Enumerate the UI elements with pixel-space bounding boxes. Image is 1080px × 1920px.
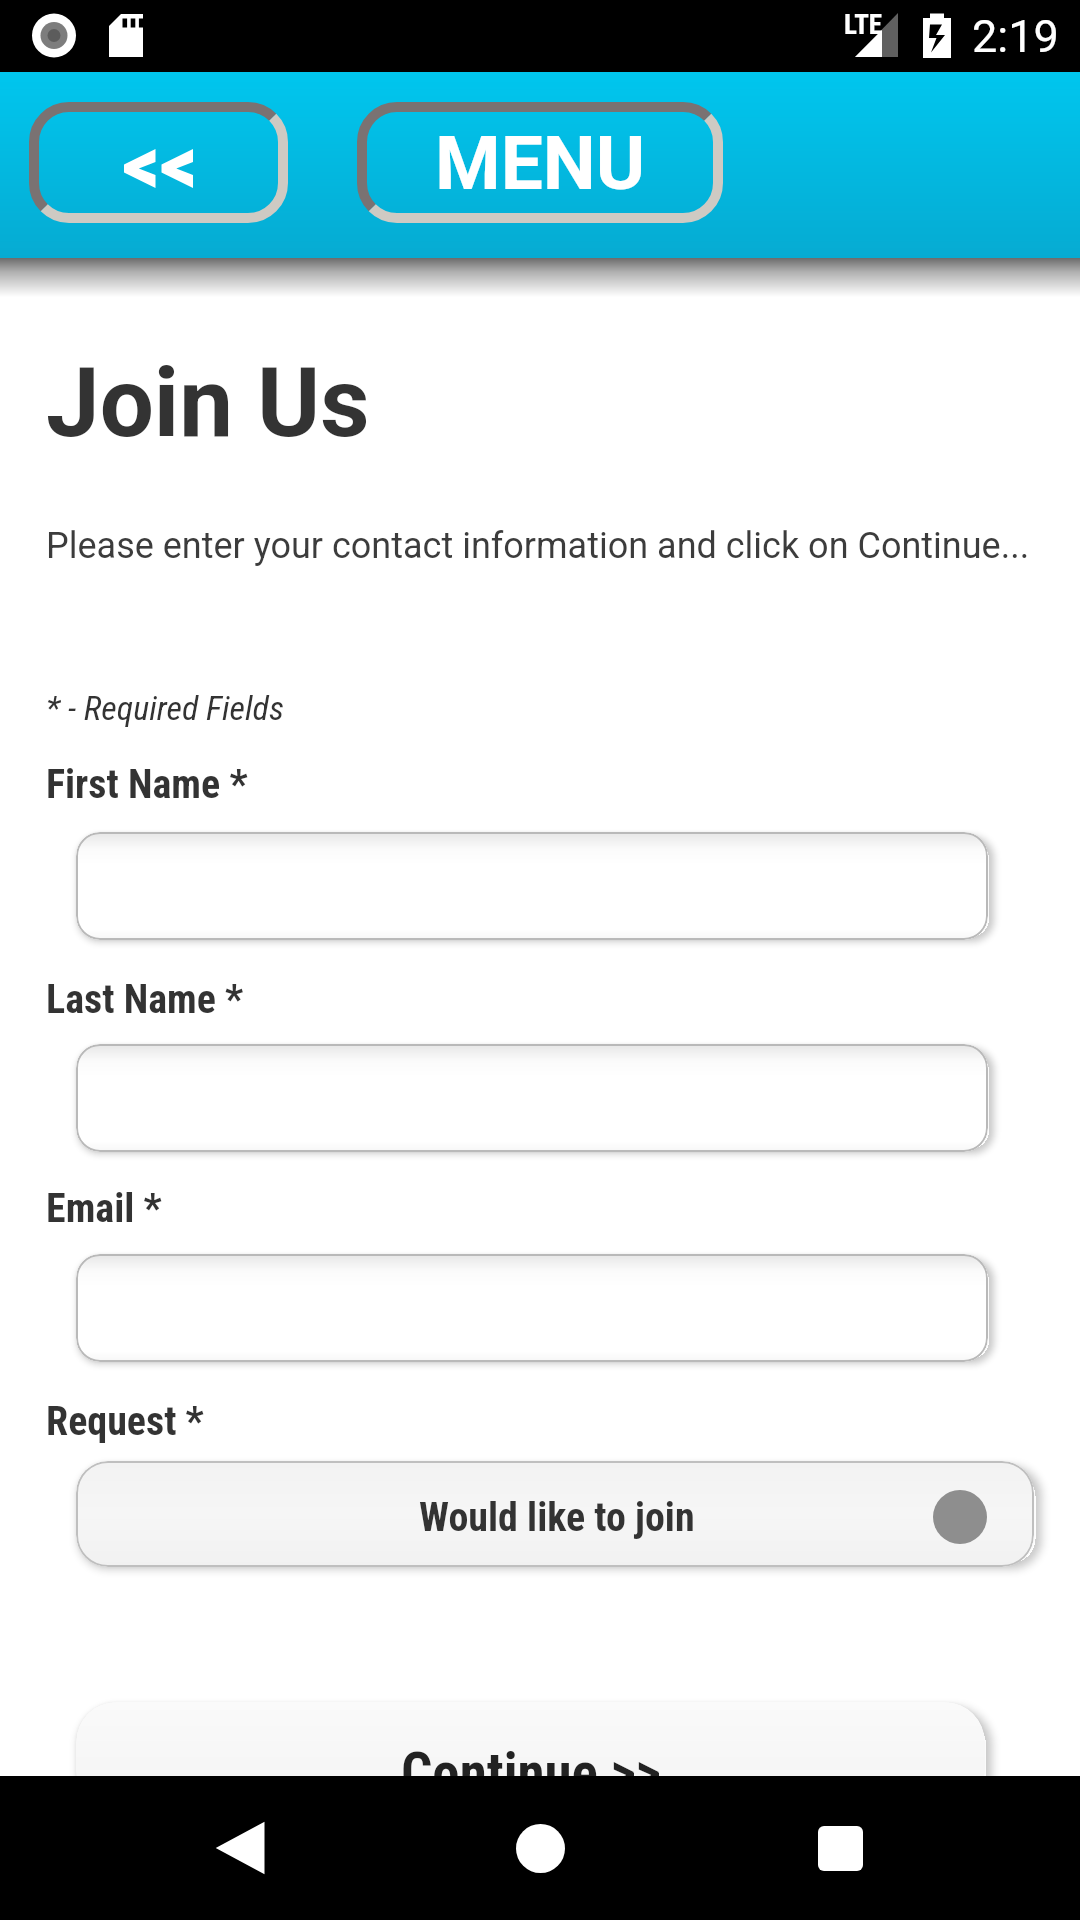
button[interactable]: Home	[477, 1776, 603, 1920]
staticText: MENU	[435, 119, 646, 207]
button[interactable]: Continue >>	[76, 1702, 985, 1812]
button[interactable]: Recents	[777, 1776, 903, 1920]
button[interactable]	[76, 1254, 988, 1362]
staticText: Request *	[46, 1398, 204, 1445]
button[interactable]: Back	[29, 102, 288, 223]
button[interactable]	[76, 1044, 988, 1152]
staticText: First Name *	[46, 761, 248, 808]
staticText: LTE	[844, 9, 883, 41]
staticText: Continue >>	[401, 1741, 661, 1805]
staticText: 2:19	[972, 10, 1059, 63]
button[interactable]: Would like to join	[76, 1461, 1034, 1567]
staticText: Would like to join	[419, 1494, 695, 1541]
button[interactable]	[76, 832, 988, 940]
staticText: Join Us	[46, 347, 370, 460]
staticText: Email *	[46, 1185, 162, 1232]
staticText: Please enter your contact information an…	[46, 525, 1030, 567]
staticText: * - Required Fields	[46, 688, 284, 728]
button[interactable]: Back	[177, 1776, 303, 1920]
button[interactable]: Menu	[357, 102, 723, 223]
staticText: Last Name *	[46, 976, 244, 1023]
